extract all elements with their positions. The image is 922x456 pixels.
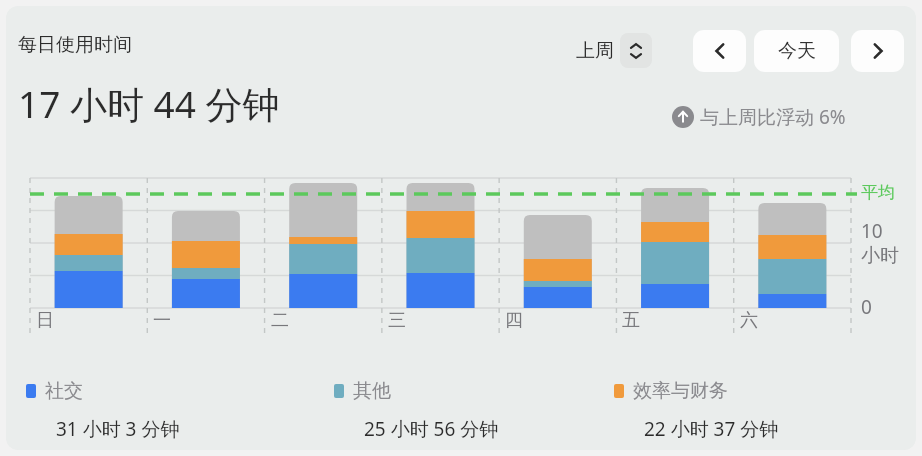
staticText: 社交 xyxy=(45,379,83,403)
staticText: 31 小时 3 分钟 xyxy=(56,416,180,442)
button[interactable]: Next xyxy=(851,30,904,72)
staticText: 10 xyxy=(861,218,883,244)
staticText: 25 小时 56 分钟 xyxy=(364,416,499,442)
button[interactable]: 今天 xyxy=(754,30,839,72)
staticText: 效率与财务 xyxy=(633,379,728,403)
button[interactable]: Previous xyxy=(693,30,746,72)
staticText: 每日使用时间 xyxy=(18,33,132,57)
staticText: 17 小时 44 分钟 xyxy=(18,78,280,129)
staticText: 今天 xyxy=(778,39,816,63)
button[interactable]: 上周 xyxy=(576,33,652,68)
staticText: 一 xyxy=(153,309,171,332)
staticText: 六 xyxy=(740,309,758,332)
staticText: 五 xyxy=(622,309,640,332)
staticText: 上周 xyxy=(576,39,614,63)
staticText: 0 xyxy=(861,294,872,320)
staticText: 小时 xyxy=(861,244,899,268)
button[interactable]: 社交 xyxy=(26,379,83,403)
staticText: 三 xyxy=(388,309,406,332)
staticText: 四 xyxy=(505,309,523,332)
other: Change period xyxy=(620,33,652,68)
staticText: 其他 xyxy=(353,379,391,403)
staticText: 二 xyxy=(271,309,289,332)
staticText: 日 xyxy=(36,309,54,332)
staticText: 平均 xyxy=(861,182,895,203)
button[interactable]: 其他 xyxy=(334,379,391,403)
staticText: 与上周比浮动 6% xyxy=(700,104,846,130)
button[interactable]: 效率与财务 xyxy=(614,379,728,403)
staticText: 22 小时 37 分钟 xyxy=(644,416,779,442)
